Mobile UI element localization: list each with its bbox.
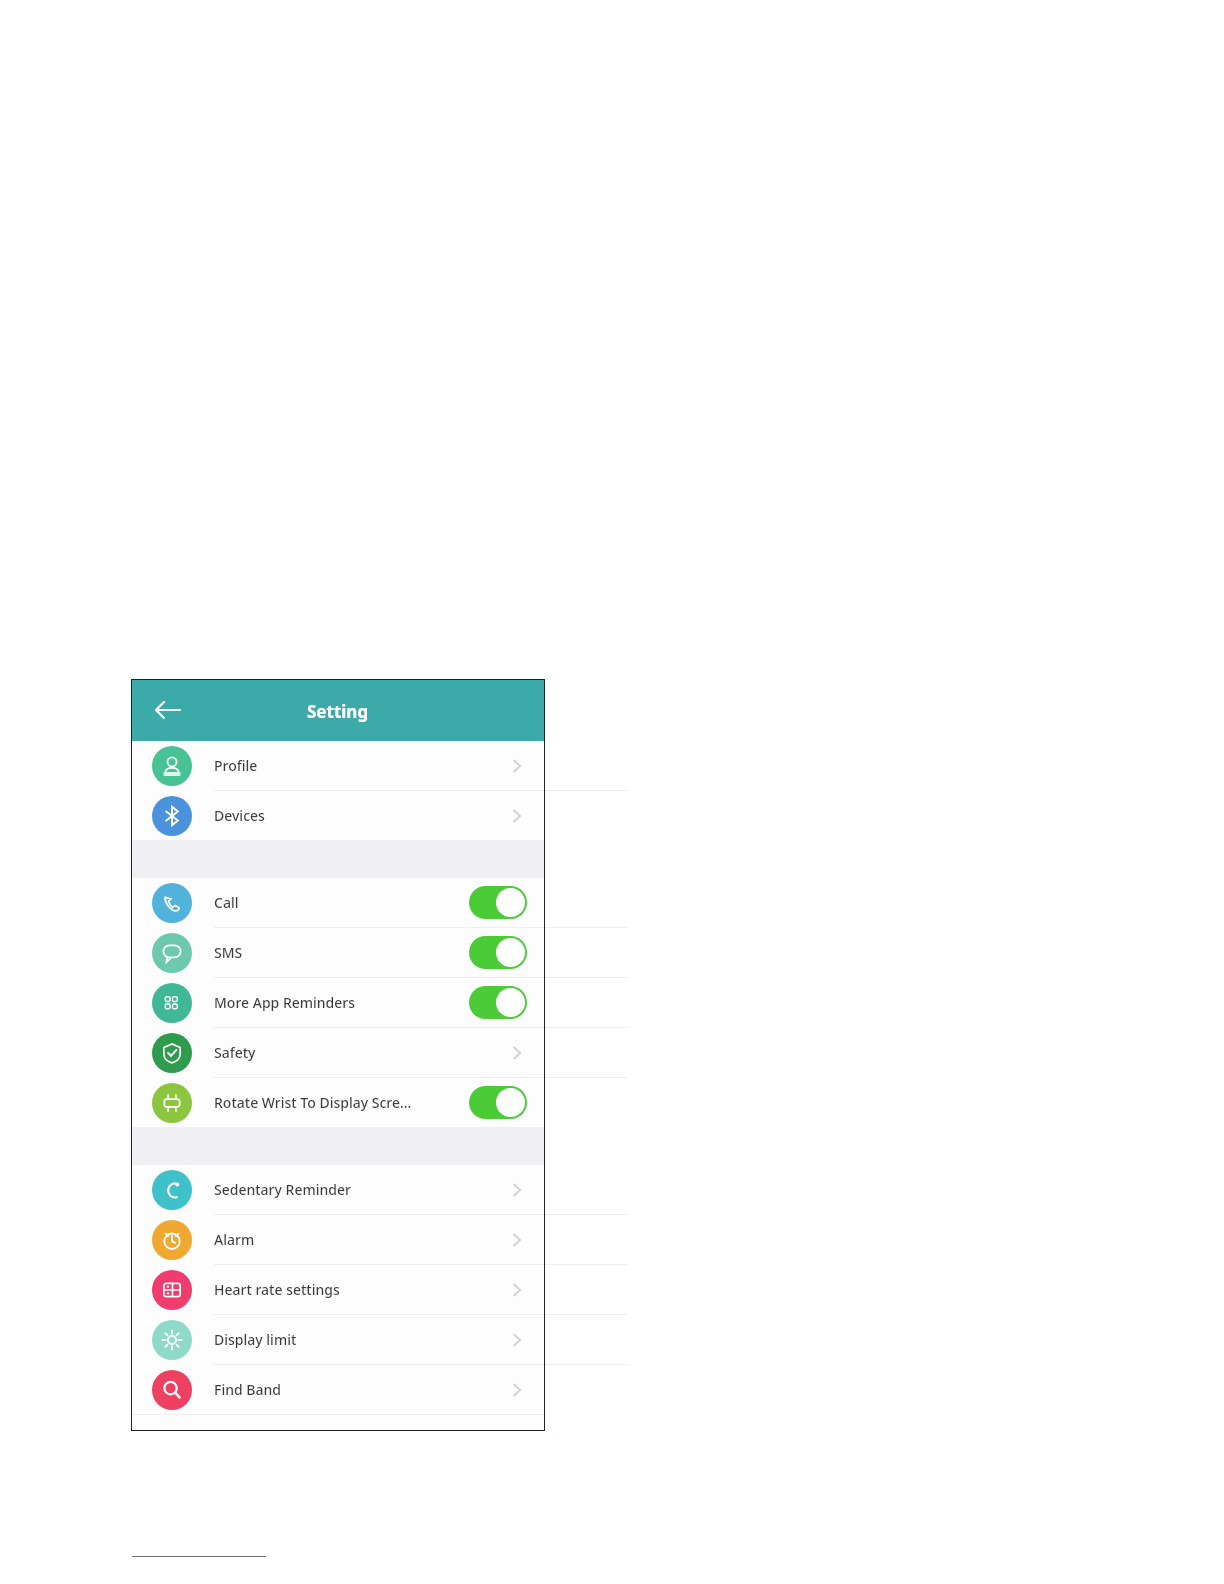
staticText: Alarm: [214, 1230, 514, 1249]
button[interactable]: SMS toggle: [469, 936, 527, 969]
button[interactable]: More App Reminders: [131, 978, 545, 1027]
button[interactable]: SMS: [131, 928, 545, 977]
staticText: Devices: [214, 806, 514, 825]
button[interactable]: Find Band: [131, 1365, 545, 1414]
button[interactable]: Call: [131, 878, 545, 927]
staticText: More App Reminders: [214, 993, 464, 1012]
staticText: Profile: [214, 756, 514, 775]
button[interactable]: Display limit: [131, 1315, 545, 1364]
button[interactable]: Safety: [131, 1028, 545, 1077]
button[interactable]: More App Reminders toggle: [469, 986, 527, 1019]
staticText: Display limit: [214, 1330, 514, 1349]
staticText: Safety: [214, 1043, 514, 1062]
button[interactable]: Back: [143, 679, 193, 741]
button[interactable]: Heart rate settings: [131, 1265, 545, 1314]
staticText: SMS: [214, 943, 464, 962]
button[interactable]: Alarm: [131, 1215, 545, 1264]
button[interactable]: Devices: [131, 791, 545, 840]
staticText: Call: [214, 893, 464, 912]
button[interactable]: Rotate Wrist To Display Scre…: [131, 1078, 545, 1127]
staticText: Find Band: [214, 1380, 514, 1399]
button[interactable]: Profile: [131, 741, 545, 790]
button[interactable]: Sedentary Reminder: [131, 1165, 545, 1214]
staticText: Setting: [307, 700, 369, 723]
button[interactable]: Rotate Wrist To Display Scre… toggle: [469, 1086, 527, 1119]
staticText: Sedentary Reminder: [214, 1180, 514, 1199]
staticText: Heart rate settings: [214, 1280, 514, 1299]
button[interactable]: Call toggle: [469, 886, 527, 919]
staticText: Rotate Wrist To Display Scre…: [214, 1093, 464, 1112]
